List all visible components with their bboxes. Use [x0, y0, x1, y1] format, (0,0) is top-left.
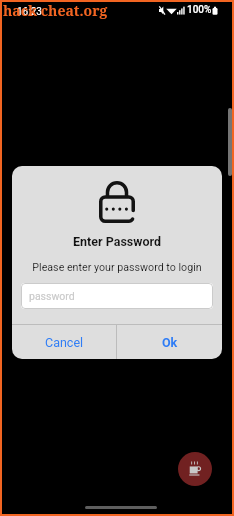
staticText: password [29, 290, 75, 302]
staticText: Cancel [45, 335, 84, 350]
staticText: 100% [187, 4, 212, 16]
staticText: Ok [162, 335, 178, 350]
button[interactable]: Ok [117, 325, 222, 359]
staticText: Please enter your password to login [12, 261, 222, 274]
button[interactable]: Cancel [12, 325, 116, 359]
staticText: hack cheat.org [3, 1, 108, 20]
button[interactable]: password [21, 283, 213, 309]
button[interactable]: Coffee [178, 452, 212, 486]
staticText: 16:23 [17, 6, 42, 18]
staticText: Enter Password [12, 234, 222, 249]
